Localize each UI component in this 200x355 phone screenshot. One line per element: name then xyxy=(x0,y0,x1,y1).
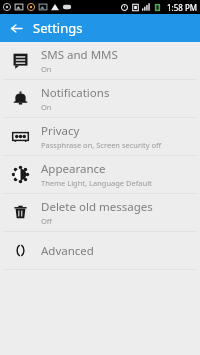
staticText: Off xyxy=(41,216,53,226)
staticText: Settings xyxy=(33,19,83,37)
staticText: On xyxy=(41,102,52,112)
staticText: Passphrase on, Screen security off xyxy=(41,140,162,150)
button[interactable]: Appearance xyxy=(0,156,200,193)
button[interactable]: Back xyxy=(6,18,26,38)
staticText: 1:58 PM xyxy=(167,2,198,13)
staticText: Notifications xyxy=(41,85,110,101)
staticText: Theme Light, Language Default xyxy=(41,178,152,188)
button[interactable]: Delete old messages xyxy=(0,194,200,231)
staticText: On xyxy=(41,64,52,74)
staticText: Privacy xyxy=(41,123,80,139)
staticText: SMS and MMS xyxy=(41,47,118,63)
button[interactable]: Privacy xyxy=(0,118,200,155)
staticText: Appearance xyxy=(41,161,106,177)
staticText: Advanced xyxy=(41,243,94,259)
button[interactable]: SMS and MMS xyxy=(0,42,200,79)
button[interactable]: Advanced xyxy=(0,232,200,269)
staticText: Delete old messages xyxy=(41,199,153,215)
button[interactable]: Notifications xyxy=(0,80,200,117)
